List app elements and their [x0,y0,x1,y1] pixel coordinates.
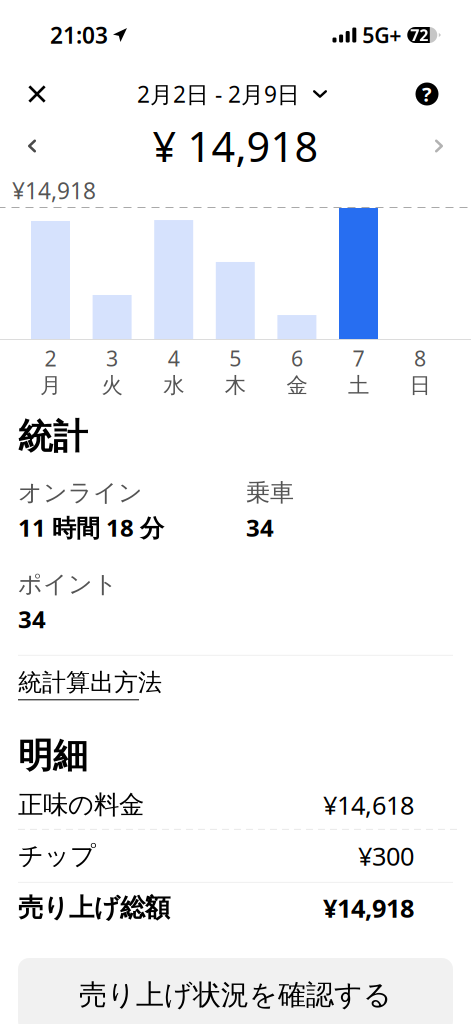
button[interactable]: 統計算出方法 [18,656,162,702]
button[interactable]: 2月2日 - 2月9日 [137,72,327,116]
staticText: 土 [348,372,369,398]
button[interactable]: Help [405,72,449,116]
staticText: 3 [106,344,118,372]
staticText: 明細 [18,734,88,777]
staticText: チップ [18,840,96,871]
staticText: 売り上げ状況を確認する [79,978,392,1012]
staticText: 日 [410,372,431,398]
staticText: ¥14,918 [12,175,96,205]
staticText: 2 [44,344,56,372]
staticText: 正味の料金 [18,789,144,820]
staticText: ¥300 [358,839,414,873]
staticText: 水 [163,372,184,398]
staticText: 5G+ [362,21,401,49]
staticText: ¥14,618 [323,788,414,822]
staticText: 月 [40,372,61,398]
staticText: 統計算出方法 [18,668,162,697]
staticText: 7 [352,344,364,372]
staticText: 34 [18,603,46,635]
staticText: 統計 [18,415,88,458]
staticText: 木 [225,372,246,398]
staticText: 34 [246,512,274,543]
staticText: 2月2日 - 2月9日 [137,79,300,109]
staticText: 21:03 [50,20,108,50]
staticText: オンライン [18,478,143,508]
button[interactable]: Next week [419,124,459,168]
staticText: ? [422,81,432,107]
button[interactable]: 売り上げ状況を確認する [18,958,453,1024]
staticText: 8 [414,344,426,372]
staticText: 4 [168,344,180,372]
staticText: 売り上げ総額 [18,892,170,923]
staticText: 5 [229,344,241,372]
staticText: 金 [286,372,307,398]
staticText: ¥14,918 [323,891,414,925]
staticText: 6 [291,344,303,372]
staticText: ポイント [18,569,118,599]
staticText: 火 [102,372,123,398]
staticText: 72 [410,24,428,46]
button[interactable]: Close [15,72,59,116]
staticText: ¥ 14,918 [152,119,318,173]
button[interactable]: Previous week [12,124,52,168]
staticText: 11 時間 18 分 [18,512,164,543]
staticText: 乗車 [246,478,294,508]
